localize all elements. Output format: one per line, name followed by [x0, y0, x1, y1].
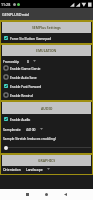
- staticText: AUDIO: [41, 106, 53, 111]
- staticText: Enable Fast Forward: [10, 84, 42, 88]
- staticText: Enable Auto Save: [10, 75, 37, 79]
- staticText: GRAPHICS: [38, 158, 56, 163]
- staticText: GENPLUSDroid: [2, 12, 29, 17]
- staticText: SEMPlus Settings: [32, 25, 61, 30]
- staticText: 11:28: [1, 2, 11, 7]
- staticText: Frameskip: [3, 59, 20, 63]
- button[interactable]: Frameskip: [1, 56, 92, 65]
- button[interactable]: Back: [57, 189, 73, 200]
- staticText: 44100: [26, 127, 36, 131]
- staticText: Enable Rewind: [10, 93, 33, 97]
- button[interactable]: Orientation: [1, 164, 92, 173]
- staticText: Sample Stretch (reduces crackling): [3, 136, 57, 140]
- staticText: Force Six Button Gamepad: [10, 36, 52, 40]
- button[interactable]: Samplerate: [1, 124, 92, 133]
- staticText: 0: [27, 59, 29, 63]
- button[interactable]: Sample Stretch (reduces crackling): [1, 133, 92, 142]
- button[interactable]: Enable Fast Forward: [1, 81, 92, 90]
- button[interactable]: Enable Rewind: [1, 90, 92, 99]
- staticText: Enable Audio: [10, 117, 31, 121]
- button[interactable]: Home: [38, 189, 54, 200]
- staticText: Enable Game Genie: [10, 66, 41, 70]
- staticText: EMULATION: [36, 48, 57, 53]
- button[interactable]: Enable Game Genie: [1, 63, 92, 72]
- staticText: Samplerate: [3, 127, 21, 131]
- staticText: Orientation: [3, 167, 21, 171]
- button[interactable]: Enable Auto Save: [1, 72, 92, 81]
- button[interactable]: Enable Audio: [1, 114, 92, 123]
- button[interactable]: Force Six Button Gamepad: [1, 33, 92, 42]
- button[interactable]: Recent apps: [19, 189, 35, 200]
- staticText: Landscape: [26, 167, 43, 171]
